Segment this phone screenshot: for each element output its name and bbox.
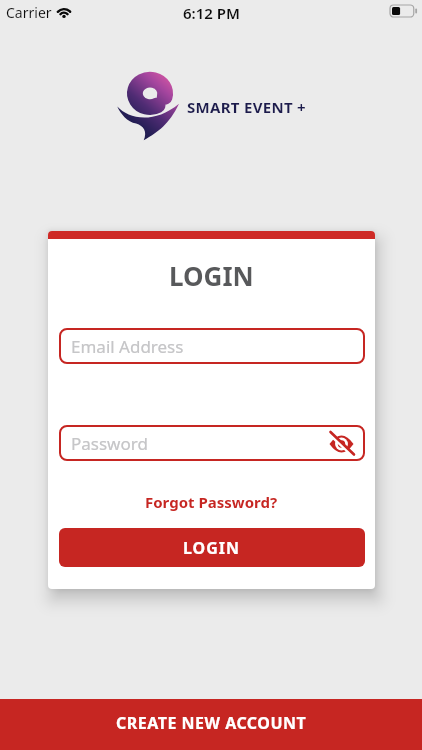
- staticText: CREATE NEW ACCOUNT: [116, 712, 307, 734]
- staticText: LOGIN: [183, 537, 241, 559]
- button[interactable]: CREATE NEW ACCOUNT: [0, 699, 422, 750]
- staticText: 6:12 PM: [183, 3, 240, 23]
- staticText: LOGIN: [169, 258, 254, 293]
- staticText: SMART EVENT +: [187, 97, 306, 117]
- button[interactable]: Forgot Password?: [145, 492, 278, 512]
- button[interactable]: LOGIN: [59, 528, 365, 567]
- button[interactable]: Email Address: [59, 328, 365, 364]
- staticText: Email Address: [71, 335, 184, 358]
- button[interactable]: [329, 432, 354, 455]
- staticText: Carrier: [6, 3, 52, 22]
- button[interactable]: Password: [59, 425, 365, 461]
- staticText: Password: [71, 432, 148, 455]
